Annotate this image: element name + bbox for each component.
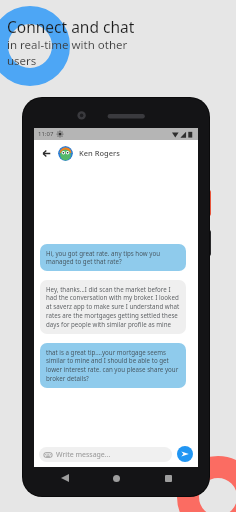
button[interactable]: Back bbox=[39, 146, 54, 161]
button[interactable]: Back bbox=[55, 468, 75, 488]
button[interactable]: that is a great tip....your mortgage see… bbox=[40, 343, 186, 388]
staticText: Ken Rogers bbox=[79, 148, 120, 158]
staticText: in real-time with other users bbox=[7, 37, 128, 69]
button[interactable]: Recents bbox=[158, 468, 178, 488]
button[interactable]: Home bbox=[106, 468, 126, 488]
staticText: that is a great tip....your mortgage see… bbox=[46, 348, 180, 383]
staticText: Hey, thanks...I did scan the market befo… bbox=[46, 285, 180, 329]
button[interactable] bbox=[58, 146, 73, 161]
button[interactable]: Write message... bbox=[39, 447, 172, 462]
staticText: Hi, you got great rate. any tips how you… bbox=[46, 249, 180, 266]
button[interactable]: Hey, thanks...I did scan the market befo… bbox=[40, 280, 186, 334]
staticText: Connect and chat bbox=[7, 16, 135, 37]
staticText: Write message... bbox=[56, 450, 111, 460]
button[interactable]: Hi, you got great rate. any tips how you… bbox=[40, 244, 186, 271]
staticText: 11:07 bbox=[38, 130, 54, 138]
button[interactable]: Send bbox=[177, 446, 193, 462]
